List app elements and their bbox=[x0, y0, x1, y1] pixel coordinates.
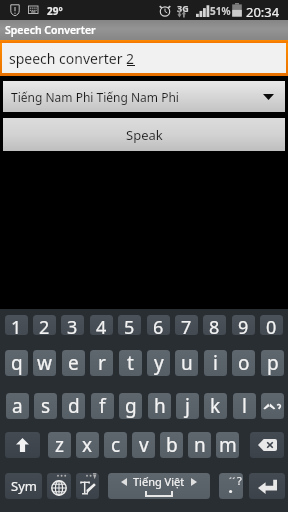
staticText: z bbox=[55, 432, 64, 458]
staticText: 3G bbox=[177, 2, 189, 14]
staticText: l bbox=[242, 393, 247, 419]
staticText: o bbox=[238, 350, 250, 376]
button[interactable]: Tone marks bbox=[261, 393, 284, 419]
staticText: d bbox=[68, 393, 80, 419]
button[interactable]: e bbox=[62, 350, 85, 376]
staticText: g bbox=[125, 393, 137, 419]
staticText: 9 bbox=[238, 315, 249, 335]
staticText: Speech Converter bbox=[5, 23, 96, 37]
button[interactable]: 1 bbox=[5, 315, 28, 335]
staticText: p bbox=[267, 350, 279, 376]
button[interactable]: u bbox=[175, 350, 198, 376]
button[interactable]: d bbox=[62, 393, 85, 419]
button[interactable]: Sym bbox=[5, 473, 42, 499]
staticText: v bbox=[139, 432, 149, 458]
staticText: f bbox=[99, 393, 106, 419]
button[interactable]: p bbox=[261, 350, 284, 376]
staticText: y bbox=[154, 350, 164, 376]
button[interactable]: 4 bbox=[90, 315, 113, 335]
staticText: w bbox=[37, 350, 52, 376]
button[interactable]: Change input language bbox=[47, 473, 71, 499]
staticText: 29° bbox=[47, 4, 63, 18]
staticText: 1 bbox=[11, 315, 22, 335]
staticText: Tiếng Việt bbox=[133, 474, 185, 489]
staticText: h bbox=[154, 393, 166, 419]
button[interactable]: m bbox=[216, 432, 239, 458]
button[interactable]: i bbox=[204, 350, 227, 376]
button[interactable]: speech converter 2 bbox=[2, 43, 286, 73]
button[interactable]: r bbox=[90, 350, 113, 376]
staticText: c bbox=[111, 432, 121, 458]
button[interactable]: 8 bbox=[203, 315, 226, 335]
staticText: ? bbox=[237, 473, 242, 488]
staticText: j bbox=[185, 393, 190, 419]
staticText: Tiếng Nam Phi Tiếng Nam Phi bbox=[11, 89, 179, 105]
staticText: x bbox=[82, 432, 93, 458]
staticText: 0 bbox=[266, 315, 277, 335]
staticText: 20:34 bbox=[246, 3, 280, 21]
staticText: n bbox=[194, 432, 206, 458]
button[interactable]: Speak bbox=[3, 118, 285, 151]
button[interactable]: s bbox=[34, 393, 57, 419]
button[interactable]: Period and symbols bbox=[219, 473, 243, 499]
staticText: b bbox=[166, 432, 178, 458]
staticText: s bbox=[41, 393, 51, 419]
button[interactable]: Enter bbox=[249, 473, 285, 499]
button[interactable]: z bbox=[48, 432, 71, 458]
staticText: Sym bbox=[11, 477, 37, 495]
staticText: 2 bbox=[39, 315, 50, 335]
staticText: 5 bbox=[124, 315, 135, 335]
staticText: u bbox=[181, 350, 193, 376]
staticText: m bbox=[219, 432, 237, 458]
staticText: k bbox=[210, 393, 221, 419]
button[interactable]: l bbox=[233, 393, 256, 419]
button[interactable]: 2 bbox=[33, 315, 56, 335]
button[interactable]: o bbox=[232, 350, 255, 376]
staticText: e bbox=[68, 350, 79, 376]
button[interactable]: g bbox=[119, 393, 142, 419]
staticText: t bbox=[127, 350, 134, 376]
staticText: speech converter 2 bbox=[9, 49, 135, 68]
staticText: r bbox=[98, 350, 106, 376]
button[interactable]: x bbox=[76, 432, 99, 458]
button[interactable]: k bbox=[204, 393, 227, 419]
button[interactable]: b bbox=[160, 432, 183, 458]
button[interactable]: 3 bbox=[61, 315, 84, 335]
button[interactable]: Backspace bbox=[250, 432, 284, 458]
button[interactable]: Handwriting bbox=[76, 473, 99, 499]
staticText: a bbox=[12, 393, 23, 419]
button[interactable]: w bbox=[33, 350, 56, 376]
staticText: q bbox=[11, 350, 23, 376]
button[interactable]: h bbox=[148, 393, 171, 419]
button[interactable]: f bbox=[91, 393, 114, 419]
staticText: 4 bbox=[96, 315, 107, 335]
button[interactable]: 5 bbox=[118, 315, 141, 335]
button[interactable]: 6 bbox=[147, 315, 170, 335]
staticText: 8 bbox=[209, 315, 220, 335]
staticText: 51% bbox=[210, 4, 231, 18]
staticText: 3 bbox=[67, 315, 78, 335]
button[interactable]: y bbox=[147, 350, 170, 376]
button[interactable]: q bbox=[5, 350, 28, 376]
button[interactable]: c bbox=[104, 432, 127, 458]
button[interactable]: v bbox=[132, 432, 155, 458]
staticText: i bbox=[213, 350, 218, 376]
button[interactable]: Shift bbox=[5, 432, 40, 458]
button[interactable]: t bbox=[119, 350, 142, 376]
button[interactable]: 9 bbox=[232, 315, 255, 335]
staticText: Speak bbox=[126, 126, 163, 144]
button[interactable]: j bbox=[176, 393, 199, 419]
staticText: 6 bbox=[153, 315, 164, 335]
button[interactable]: n bbox=[188, 432, 211, 458]
button[interactable]: 7 bbox=[175, 315, 198, 335]
button[interactable]: 0 bbox=[260, 315, 283, 335]
staticText: 7 bbox=[181, 315, 192, 335]
button[interactable]: Tiếng Nam Phi Tiếng Nam Phi bbox=[3, 81, 285, 112]
button[interactable]: Tiếng Việt bbox=[108, 473, 210, 499]
button[interactable]: a bbox=[6, 393, 29, 419]
